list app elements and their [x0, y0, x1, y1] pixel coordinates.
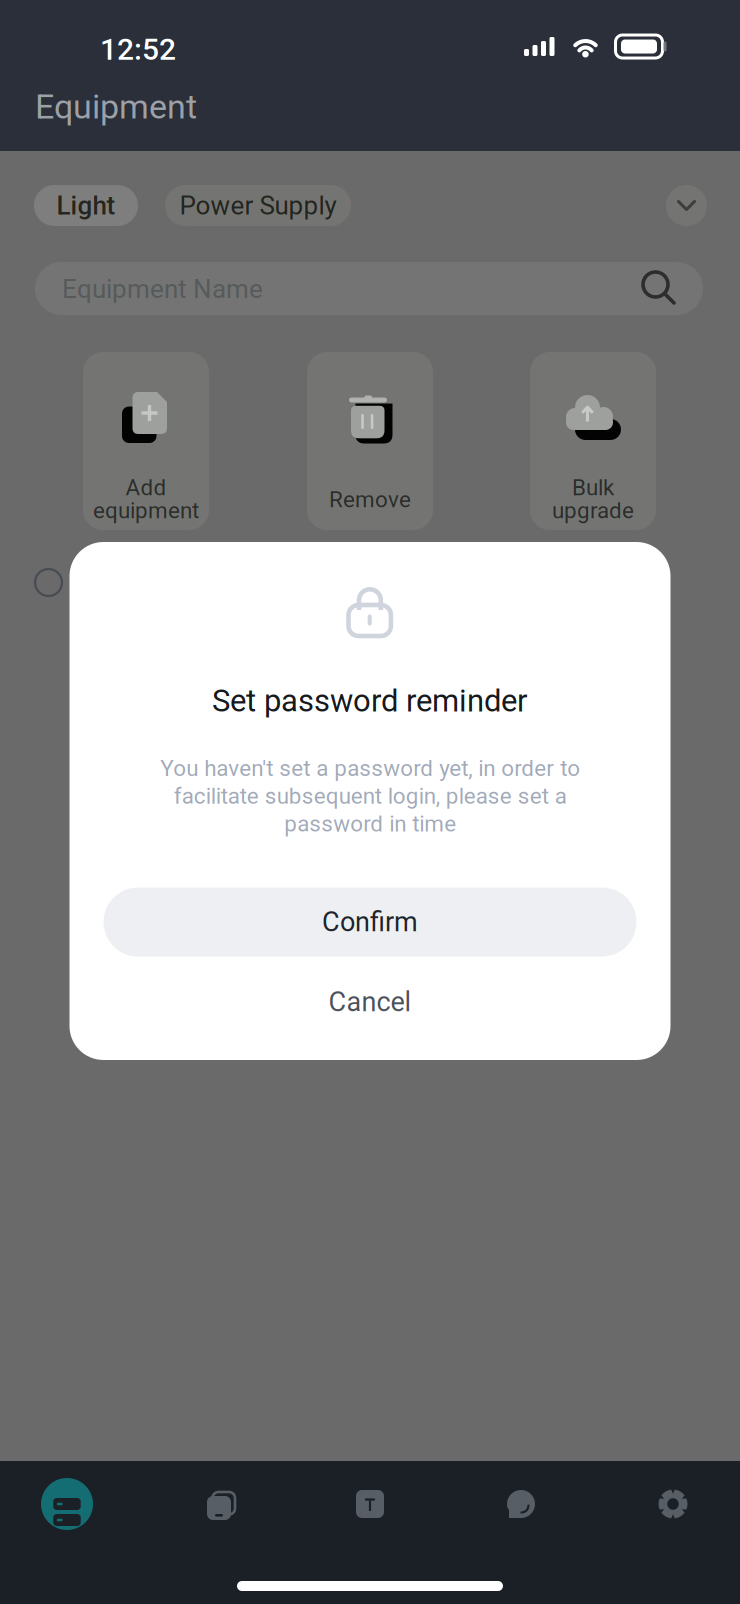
button[interactable]: Add [83, 352, 209, 530]
button[interactable]: Bulk [530, 352, 656, 530]
staticText: equipment [93, 497, 199, 524]
staticText: upgrade [552, 497, 634, 524]
button[interactable]: Equipment [7, 1466, 127, 1542]
button[interactable]: Expand filters [666, 185, 707, 226]
button[interactable]: Devices [159, 1466, 279, 1542]
staticText: Set password reminder [212, 683, 528, 719]
staticText: Cancel [328, 986, 411, 1018]
staticText: Remove [329, 486, 411, 513]
staticText: Power Supply [179, 190, 336, 221]
staticText: Bulk [572, 474, 614, 501]
button[interactable]: Select all [35, 569, 62, 596]
staticText: 12:52 [100, 32, 176, 67]
button[interactable]: Confirm [103, 887, 636, 956]
staticText: Confirm [322, 906, 418, 938]
staticText: Equipment Name [62, 274, 263, 304]
button[interactable]: Remove [307, 352, 433, 530]
button[interactable]: Settings [613, 1466, 733, 1542]
button[interactable]: Messages [461, 1466, 581, 1542]
staticText: Light [56, 190, 115, 221]
staticText: You haven't set a password yet, in order… [160, 755, 580, 837]
button[interactable]: Cancel [103, 971, 636, 1033]
button[interactable]: Light [34, 185, 138, 226]
button[interactable]: Templates [310, 1466, 430, 1542]
button[interactable]: Power Supply [165, 185, 351, 226]
staticText: Equipment [35, 87, 197, 127]
button[interactable]: Equipment Name [35, 262, 703, 315]
staticText: Add [125, 474, 166, 501]
